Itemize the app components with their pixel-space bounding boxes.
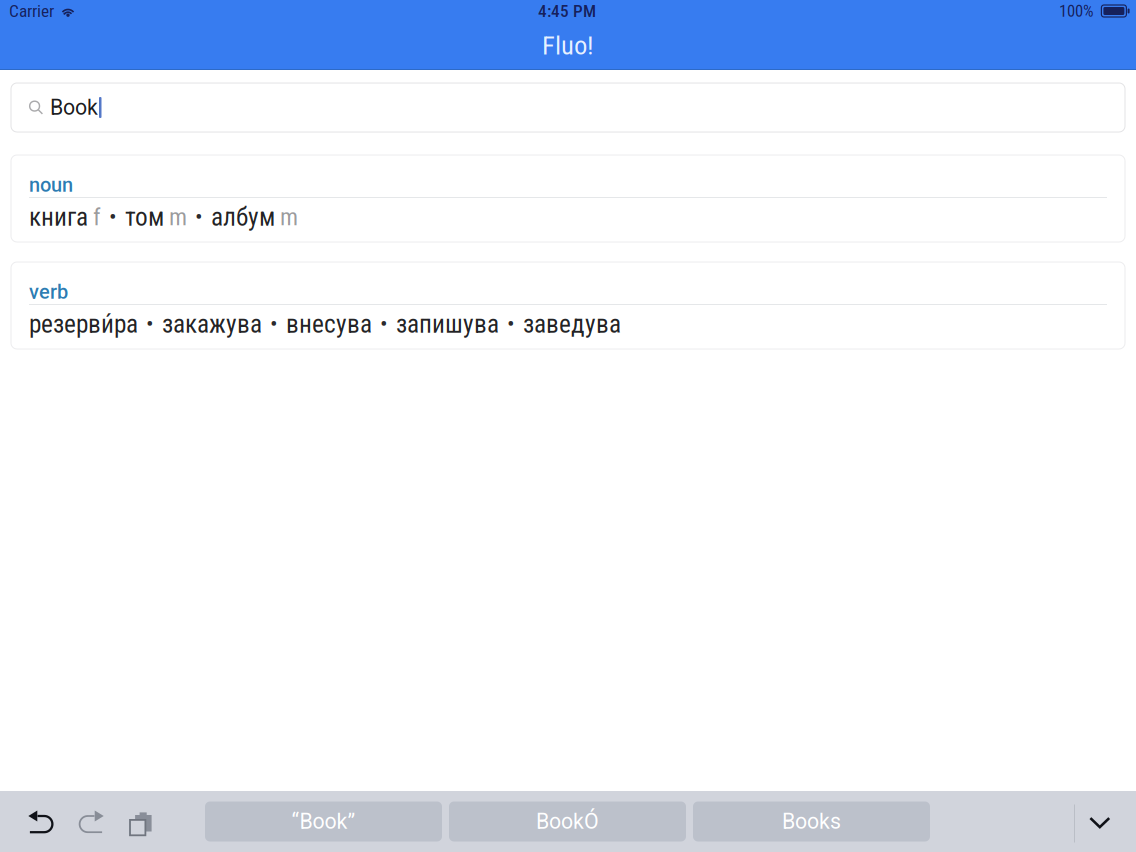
button[interactable]: BookÓ bbox=[449, 801, 686, 841]
staticText: закажува bbox=[162, 309, 262, 339]
staticText: m bbox=[169, 203, 187, 231]
button[interactable]: Undo bbox=[22, 799, 59, 843]
staticText: “Book” bbox=[291, 809, 355, 834]
staticText: Carrier bbox=[9, 1, 54, 21]
staticText: запишува bbox=[396, 309, 499, 339]
staticText: • bbox=[195, 204, 203, 230]
staticText: книга bbox=[29, 202, 88, 232]
staticText: том bbox=[125, 202, 164, 232]
button[interactable]: “Book” bbox=[205, 801, 442, 841]
staticText: • bbox=[146, 311, 154, 337]
staticText: verb bbox=[29, 280, 68, 304]
staticText: BookÓ bbox=[536, 809, 599, 834]
staticText: Fluo! bbox=[542, 30, 594, 61]
staticText: резерви́ра bbox=[29, 309, 138, 339]
staticText: албум bbox=[211, 202, 275, 232]
staticText: Book bbox=[50, 95, 98, 120]
staticText: • bbox=[270, 311, 278, 337]
staticText: 100% bbox=[1059, 1, 1094, 21]
staticText: • bbox=[109, 204, 117, 230]
staticText: внесува bbox=[286, 309, 372, 339]
staticText: заведува bbox=[523, 309, 621, 339]
staticText: • bbox=[507, 311, 515, 337]
button[interactable]: Hide keyboard bbox=[1080, 799, 1120, 843]
button[interactable]: Books bbox=[693, 801, 930, 841]
button[interactable]: Redo bbox=[73, 799, 110, 843]
staticText: • bbox=[380, 311, 388, 337]
staticText: Books bbox=[782, 809, 841, 834]
staticText: 4:45 PM bbox=[538, 1, 596, 21]
button[interactable]: Paste bbox=[124, 799, 158, 843]
staticText: m bbox=[280, 203, 298, 231]
staticText: noun bbox=[29, 173, 73, 197]
staticText: f bbox=[93, 203, 101, 231]
